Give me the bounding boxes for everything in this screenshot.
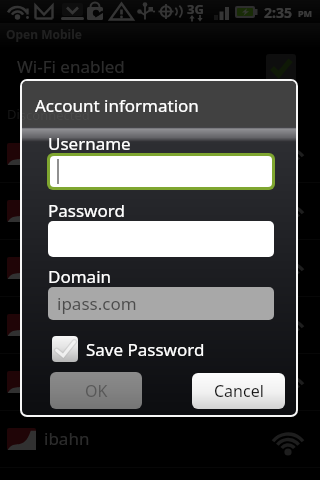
staticText: ibahn xyxy=(44,199,90,222)
button[interactable]: ibahn xyxy=(0,126,320,183)
staticText: OK xyxy=(85,380,108,402)
staticText: Username xyxy=(48,132,131,155)
staticText: Account information xyxy=(35,94,199,117)
button[interactable]: Password field xyxy=(48,221,274,257)
staticText: Disconnected xyxy=(7,105,90,123)
button[interactable]: ibahn xyxy=(0,411,320,468)
button[interactable]: ibahn xyxy=(0,354,320,411)
button[interactable]: OK xyxy=(50,372,142,409)
button[interactable]: ibahn xyxy=(0,297,320,354)
staticText: Wi-Fi enabled xyxy=(17,55,125,78)
button[interactable]: Domain field xyxy=(48,287,274,320)
staticText: Open Mobile xyxy=(6,26,82,42)
button[interactable]: Username field xyxy=(50,156,272,187)
button[interactable]: Cancel xyxy=(192,373,285,409)
button[interactable]: ibahn xyxy=(0,183,320,240)
button[interactable]: Save Password xyxy=(52,335,205,363)
staticText: Password xyxy=(48,199,125,222)
staticText: 3G xyxy=(187,0,204,18)
staticText: ipass.com xyxy=(57,292,137,315)
staticText: ibahn xyxy=(44,256,90,279)
staticText: Disconnected xyxy=(22,106,90,124)
staticText: ibahn xyxy=(44,370,90,393)
staticText: Cancel xyxy=(214,380,264,402)
staticText: PM xyxy=(298,7,313,19)
button[interactable]: Wi-Fi enabled xyxy=(266,54,296,82)
staticText: 2:35 xyxy=(264,3,292,22)
staticText: ibahn xyxy=(44,313,90,336)
staticText: Domain xyxy=(48,265,112,288)
staticText: ibahn xyxy=(44,427,90,450)
button[interactable]: ibahn xyxy=(0,240,320,297)
staticText: Save Password xyxy=(86,338,205,361)
staticText: ibahn xyxy=(44,142,90,165)
